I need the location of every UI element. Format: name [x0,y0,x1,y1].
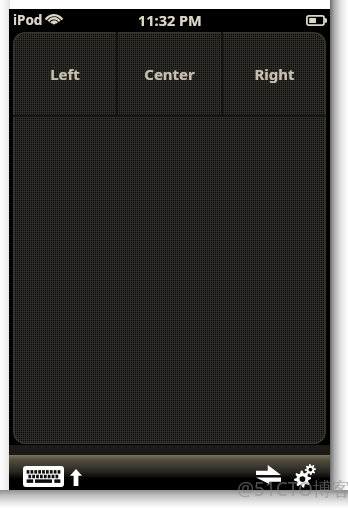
button[interactable]: Settings [295,463,317,485]
button[interactable]: Center [118,32,221,115]
staticText: Left [50,64,80,84]
staticText: 11:32 PM [138,10,202,30]
staticText: Center [144,64,195,84]
staticText: iPod [13,11,43,29]
button[interactable]: Keyboard [23,466,64,487]
button[interactable]: Transfer [256,465,281,484]
button[interactable]: Right [223,32,326,115]
button[interactable]: Move up [70,469,82,486]
button[interactable]: Left [13,32,116,115]
staticText: Right [254,64,295,84]
staticText: @51CTO博客 [237,476,348,502]
